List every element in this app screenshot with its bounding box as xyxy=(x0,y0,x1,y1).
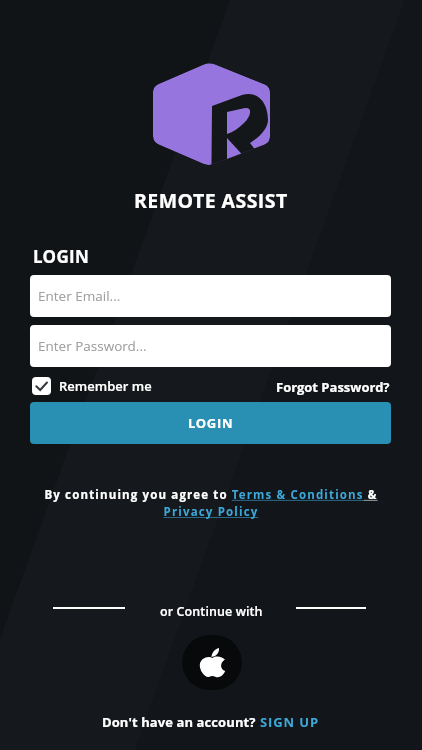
staticText: Enter Email... xyxy=(38,287,121,305)
staticText: Forgot Password? xyxy=(276,378,390,396)
button[interactable]: Continue with Apple xyxy=(182,635,242,690)
staticText: Don't have an account? xyxy=(102,713,260,731)
button[interactable]: By continuing you agree to Terms & Condi… xyxy=(41,487,381,520)
staticText: SIGN UP xyxy=(260,713,320,731)
staticText: Remember me xyxy=(59,377,152,395)
button[interactable]: Don't have an account? xyxy=(0,713,422,731)
button[interactable]: LOGIN xyxy=(30,402,391,444)
button[interactable]: Enter Email... xyxy=(30,275,391,317)
staticText: or Continue with xyxy=(160,603,263,620)
staticText: LOGIN xyxy=(188,414,234,432)
staticText: LOGIN xyxy=(33,245,90,268)
staticText: By continuing you agree to Terms & Condi… xyxy=(41,487,381,520)
button[interactable]: Forgot Password? xyxy=(276,378,390,396)
button[interactable]: Remember me xyxy=(32,377,152,395)
button[interactable]: Enter Password... xyxy=(30,325,391,367)
staticText: REMOTE ASSIST xyxy=(134,187,288,214)
staticText: Enter Password... xyxy=(38,337,147,355)
